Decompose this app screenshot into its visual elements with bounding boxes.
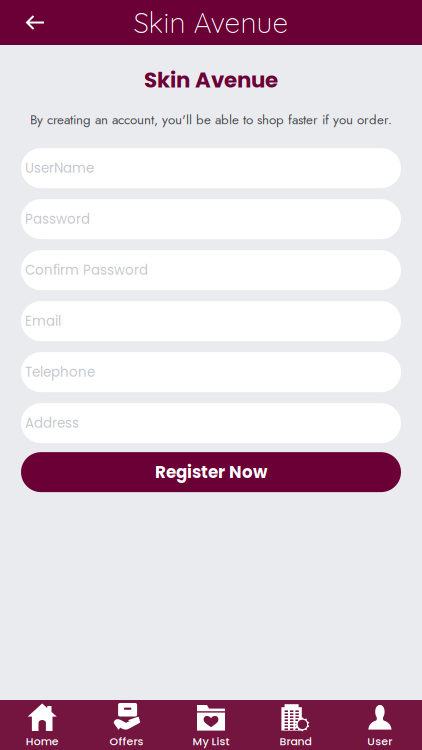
staticText: My List [192, 734, 229, 749]
staticText: Skin Avenue [133, 5, 288, 40]
staticText: UserName [25, 159, 94, 177]
button[interactable]: Home [0, 700, 84, 750]
staticText: Email [25, 312, 61, 330]
button[interactable]: Brand [253, 700, 338, 750]
button[interactable]: My List [169, 700, 253, 750]
staticText: Address [25, 414, 79, 432]
staticText: Skin Avenue [144, 65, 278, 95]
staticText: By creating an account, you'll be able t… [30, 110, 392, 129]
staticText: Brand [279, 734, 311, 749]
staticText: Register Now [155, 460, 267, 484]
staticText: Confirm Password [25, 261, 148, 279]
staticText: Home [26, 734, 59, 749]
staticText: Offers [110, 734, 144, 749]
button[interactable]: Register Now [21, 452, 401, 492]
button[interactable]: Offers [84, 700, 169, 750]
button[interactable]: User [338, 700, 422, 750]
button[interactable]: Back [0, 0, 59, 45]
staticText: Telephone [25, 363, 95, 381]
staticText: Password [25, 210, 90, 228]
staticText: User [367, 734, 392, 749]
